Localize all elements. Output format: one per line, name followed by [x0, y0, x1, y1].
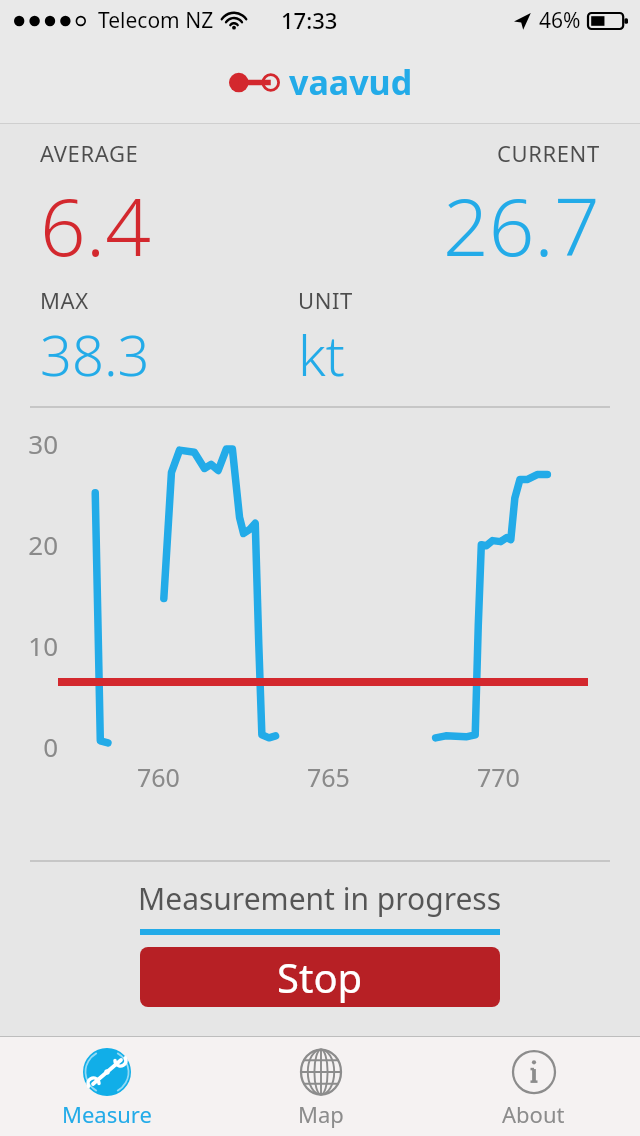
staticText: 17:33 [281, 5, 338, 35]
staticText: UNIT [298, 285, 353, 315]
staticText: 20 [0, 527, 58, 562]
staticText: 30 [0, 426, 58, 461]
staticText: AVERAGE [40, 138, 139, 168]
button[interactable]: Map [214, 1037, 427, 1136]
staticText: vaavud [289, 59, 413, 105]
staticText: MAX [40, 285, 89, 315]
staticText: Measurement in progress [138, 878, 502, 919]
staticText: 770 [477, 760, 520, 794]
staticText: Measure [62, 1099, 152, 1129]
staticText: 26.7 [443, 170, 600, 279]
staticText: 10 [0, 628, 58, 663]
staticText: kt [298, 316, 345, 392]
staticText: 46% [539, 6, 581, 35]
button[interactable]: Measure [0, 1037, 214, 1136]
staticText: 0 [0, 729, 58, 764]
staticText: 760 [137, 760, 180, 794]
staticText: 38.3 [40, 316, 150, 392]
staticText: About [502, 1099, 565, 1129]
staticText: Telecom NZ [98, 6, 214, 35]
button[interactable]: Stop [140, 947, 500, 1007]
staticText: 765 [307, 760, 350, 794]
button[interactable]: About [427, 1037, 640, 1136]
staticText: 6.4 [40, 170, 151, 279]
staticText: CURRENT [497, 138, 600, 168]
staticText: Stop [277, 950, 363, 1004]
staticText: Map [298, 1099, 344, 1129]
